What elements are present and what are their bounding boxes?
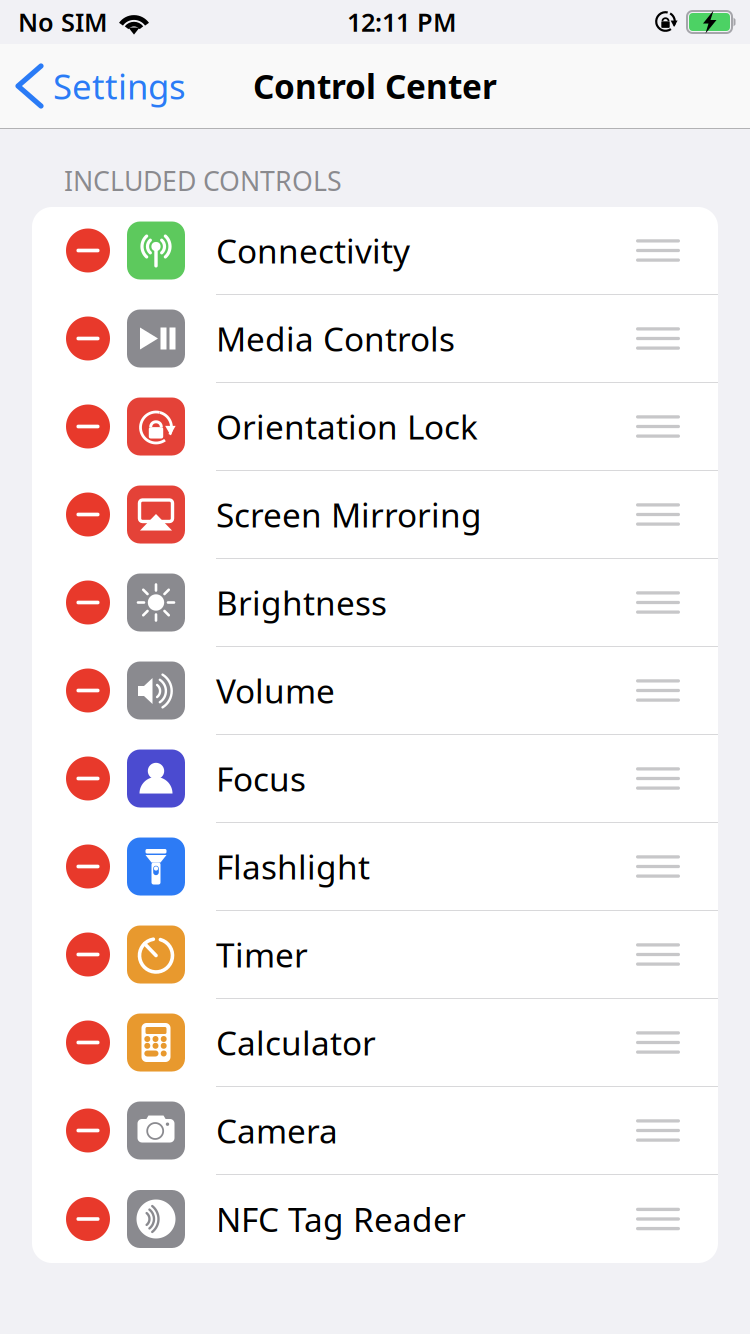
button[interactable]: Remove Orientation Lock [32, 382, 127, 470]
staticText: Calculator [216, 1020, 376, 1065]
button[interactable]: Remove Flashlight [32, 822, 127, 910]
button[interactable]: Connectivity [32, 207, 718, 295]
button[interactable]: Timer [32, 911, 718, 999]
button[interactable]: Calculator [32, 999, 718, 1087]
button[interactable]: Remove NFC Tag Reader [32, 1175, 127, 1263]
button[interactable]: Volume [32, 647, 718, 735]
button[interactable]: Remove Focus [32, 734, 127, 822]
staticText: Connectivity [216, 228, 410, 273]
button[interactable]: Remove Connectivity [32, 206, 127, 294]
button[interactable]: Remove Timer [32, 910, 127, 998]
button[interactable]: Remove Volume [32, 646, 127, 734]
button[interactable]: Remove Calculator [32, 998, 127, 1086]
staticText: No SIM [18, 5, 108, 39]
button[interactable]: Media Controls [32, 295, 718, 383]
staticText: Media Controls [216, 316, 455, 361]
button[interactable]: Remove Screen Mirroring [32, 470, 127, 558]
button[interactable]: Flashlight [32, 823, 718, 911]
button[interactable]: Remove Camera [32, 1086, 127, 1174]
button[interactable]: Brightness [32, 559, 718, 647]
staticText: Camera [216, 1108, 338, 1153]
button[interactable]: Remove Brightness [32, 558, 127, 646]
button[interactable]: Orientation Lock [32, 383, 718, 471]
button[interactable]: Camera [32, 1087, 718, 1175]
staticText: Timer [216, 932, 308, 977]
button[interactable]: Focus [32, 735, 718, 823]
staticText: NFC Tag Reader [216, 1197, 466, 1241]
staticText: Orientation Lock [216, 404, 478, 449]
button[interactable]: Settings [0, 44, 196, 128]
staticText: 12:11 PM [347, 5, 457, 39]
staticText: INCLUDED CONTROLS [64, 163, 342, 198]
button[interactable]: NFC Tag Reader [32, 1175, 718, 1263]
staticText: Brightness [216, 580, 387, 625]
staticText: Volume [216, 668, 335, 713]
staticText: Flashlight [216, 844, 370, 889]
button[interactable]: Remove Media Controls [32, 294, 127, 382]
staticText: Control Center [253, 64, 497, 108]
button[interactable]: Screen Mirroring [32, 471, 718, 559]
staticText: Screen Mirroring [216, 492, 482, 537]
staticText: Settings [53, 63, 186, 109]
staticText: Focus [216, 756, 306, 801]
